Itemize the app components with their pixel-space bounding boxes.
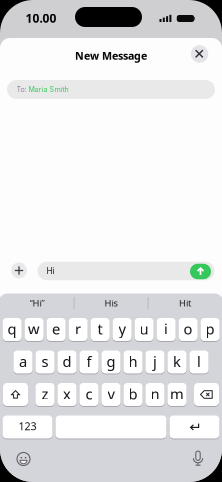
- button[interactable]: h: [123, 350, 143, 373]
- button[interactable]: q: [2, 318, 22, 341]
- staticText: u: [140, 319, 149, 338]
- staticText: Hi: [46, 266, 54, 276]
- button[interactable]: Hit: [149, 295, 221, 310]
- staticText: b: [128, 384, 137, 403]
- button[interactable]: z: [35, 383, 55, 406]
- button[interactable]: a: [13, 350, 33, 373]
- button[interactable]: 123: [2, 415, 52, 438]
- staticText: d: [62, 351, 71, 371]
- staticText: n: [150, 384, 159, 403]
- staticText: r: [75, 319, 81, 338]
- staticText: His: [104, 297, 117, 309]
- staticText: s: [41, 351, 48, 371]
- button[interactable]: e: [46, 318, 66, 341]
- staticText: k: [173, 351, 181, 371]
- staticText: h: [128, 351, 137, 371]
- button[interactable]: m: [167, 383, 187, 406]
- staticText: p: [206, 319, 215, 338]
- staticText: j: [153, 351, 157, 371]
- button[interactable]: t: [90, 318, 110, 341]
- button[interactable]: j: [145, 350, 165, 373]
- staticText: q: [8, 319, 17, 338]
- button[interactable]: y: [112, 318, 132, 341]
- button[interactable]: b: [123, 383, 143, 406]
- staticText: e: [52, 319, 60, 338]
- button[interactable]: [190, 450, 206, 468]
- button[interactable]: g: [101, 350, 121, 373]
- button[interactable]: i: [156, 318, 176, 341]
- staticText: i: [164, 319, 168, 338]
- button[interactable]: d: [57, 350, 77, 373]
- button[interactable]: r: [68, 318, 88, 341]
- staticText: To:: [16, 85, 26, 94]
- button[interactable]: [15, 451, 31, 467]
- staticText: New Message: [75, 48, 147, 63]
- staticText: 123: [18, 419, 36, 433]
- button[interactable]: Hi: [37, 262, 214, 280]
- staticText: c: [85, 384, 92, 403]
- button[interactable]: n: [145, 383, 165, 406]
- staticText: Maria Smith: [28, 85, 68, 94]
- staticText: l: [197, 351, 201, 371]
- button[interactable]: x: [57, 383, 77, 406]
- button[interactable]: v: [101, 383, 121, 406]
- button[interactable]: c: [79, 383, 99, 406]
- button[interactable]: l: [189, 350, 209, 373]
- button[interactable]: [11, 262, 27, 278]
- button[interactable]: To:: [7, 80, 215, 99]
- button[interactable]: w: [24, 318, 44, 341]
- staticText: “Hi”: [29, 297, 44, 309]
- staticText: a: [19, 351, 27, 371]
- staticText: w: [28, 319, 40, 338]
- button[interactable]: [190, 264, 211, 279]
- button[interactable]: [191, 45, 208, 63]
- staticText: y: [119, 319, 126, 338]
- staticText: f: [86, 351, 91, 371]
- staticText: v: [107, 384, 114, 403]
- button[interactable]: [194, 383, 219, 406]
- staticText: Hit: [179, 297, 191, 309]
- staticText: m: [170, 384, 184, 403]
- staticText: 10.00: [25, 10, 56, 26]
- button[interactable]: k: [167, 350, 187, 373]
- button[interactable]: u: [134, 318, 154, 341]
- button[interactable]: [169, 415, 219, 438]
- button[interactable]: p: [200, 318, 220, 341]
- button[interactable]: [3, 383, 28, 406]
- button[interactable]: His: [75, 295, 147, 310]
- staticText: o: [184, 319, 193, 338]
- button[interactable]: f: [79, 350, 99, 373]
- staticText: z: [41, 384, 48, 403]
- button[interactable]: o: [178, 318, 198, 341]
- staticText: x: [63, 384, 71, 403]
- button[interactable]: “Hi”: [1, 295, 73, 310]
- staticText: t: [98, 319, 103, 338]
- staticText: g: [106, 351, 115, 371]
- button[interactable]: s: [35, 350, 55, 373]
